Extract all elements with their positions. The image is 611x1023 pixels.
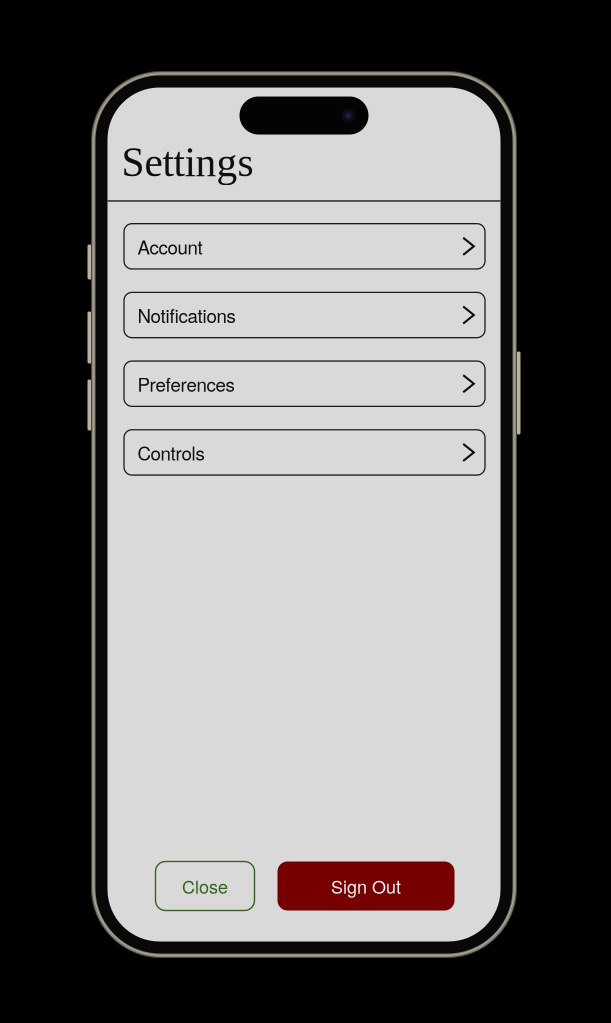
- staticText: Sign Out: [331, 873, 401, 899]
- staticText: Controls: [137, 439, 204, 466]
- staticText: Preferences: [137, 370, 234, 397]
- button[interactable]: Notifications: [124, 292, 485, 338]
- button[interactable]: Controls: [124, 430, 485, 475]
- staticText: Notifications: [137, 302, 235, 328]
- staticText: Account: [137, 233, 202, 260]
- staticText: Close: [182, 873, 228, 899]
- button[interactable]: Preferences: [124, 361, 485, 406]
- button[interactable]: Account: [124, 224, 485, 269]
- button[interactable]: Close: [155, 861, 254, 910]
- button[interactable]: Sign Out: [277, 861, 454, 910]
- staticText: Settings: [121, 139, 253, 185]
